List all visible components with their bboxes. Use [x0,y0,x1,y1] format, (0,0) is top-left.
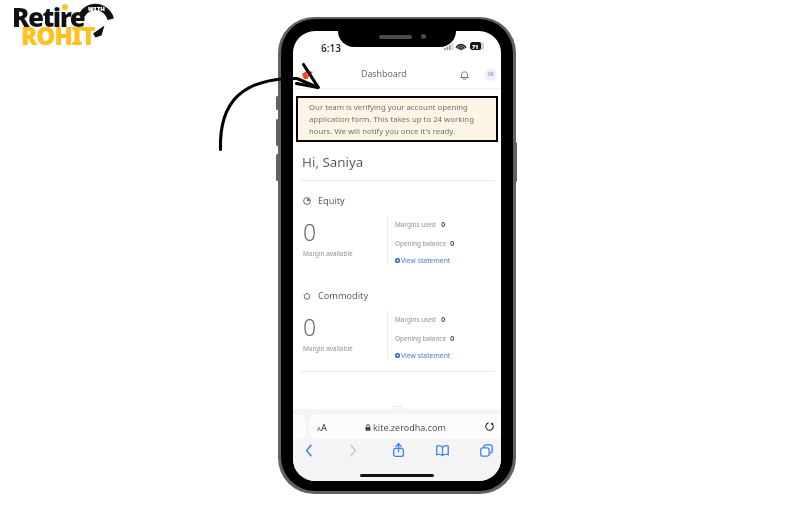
button[interactable]: Profile [484,68,497,81]
staticText: 0 [303,311,317,342]
staticText: SK [488,71,494,78]
staticText: Margins used [395,220,436,229]
staticText: A [321,421,327,433]
staticText: Hi, Saniya [302,153,364,171]
button[interactable]: kite.zerodha.com [309,414,501,439]
staticText: Margins used [395,315,436,324]
staticText: Our team is verifying your account openi… [309,102,484,136]
staticText: 6:13 [321,41,341,55]
staticText: 0 [303,216,317,247]
staticText: Opening balance [395,239,447,248]
staticText: View statement [401,351,451,360]
staticText: Retire [12,0,85,34]
button[interactable]: Forward [344,441,362,459]
button[interactable]: Share [389,441,407,459]
staticText: 71 [472,43,479,50]
staticText: Equity [318,194,345,207]
button[interactable]: Back [300,441,318,459]
staticText: Dashboard [361,68,407,80]
staticText: ROHIT [21,19,95,52]
staticText: 0 [450,238,455,248]
staticText: kite.zerodha.com [373,421,446,433]
staticText: Margin available [303,344,353,353]
staticText: 0 [441,314,446,324]
staticText: 0 [441,219,446,229]
staticText: Margin available [303,249,353,258]
button[interactable]: View statement [395,351,451,360]
button[interactable]: Bookmarks [433,441,451,459]
staticText: View statement [401,256,451,265]
button[interactable]: Notifications [456,66,473,83]
staticText: Commodity [318,289,369,302]
button[interactable]: View statement [395,256,451,265]
staticText: 0 [450,333,455,343]
staticText: WITH [88,5,106,12]
staticText: Opening balance [395,334,447,343]
staticText: A [317,425,321,433]
button[interactable]: Tabs [477,441,495,459]
button[interactable]: Kite logo [302,69,313,80]
